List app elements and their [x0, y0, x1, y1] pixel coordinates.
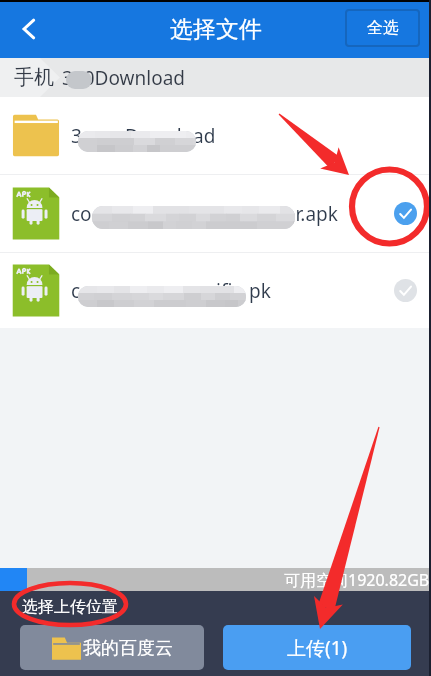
button[interactable]: c — [0, 253, 431, 328]
staticText: c — [71, 278, 81, 304]
staticText: 上传(1) — [287, 635, 348, 661]
staticText: 手机 — [14, 65, 54, 90]
staticText: 360Download — [62, 65, 186, 91]
staticText: or.apk — [284, 201, 338, 227]
button[interactable]: Back — [6, 6, 52, 52]
button[interactable]: 3 — [0, 97, 431, 174]
button[interactable]: 全选 — [345, 9, 420, 47]
staticText: Download — [125, 123, 216, 149]
staticText: ifi — [216, 278, 233, 304]
button[interactable]: co — [0, 175, 431, 252]
staticText: co — [71, 201, 92, 227]
staticText: 全选 — [367, 18, 399, 38]
button[interactable]: 我的百度云 — [20, 625, 204, 670]
staticText: 我的百度云 — [83, 637, 173, 660]
staticText: 选择上传位置 — [22, 597, 118, 617]
button[interactable]: 上传(1) — [223, 625, 411, 670]
staticText: 3 — [71, 123, 82, 149]
staticText: pk — [249, 278, 271, 304]
staticText: 选择文件 — [170, 15, 262, 44]
staticText: 可用空间1920.82GB — [284, 569, 430, 591]
